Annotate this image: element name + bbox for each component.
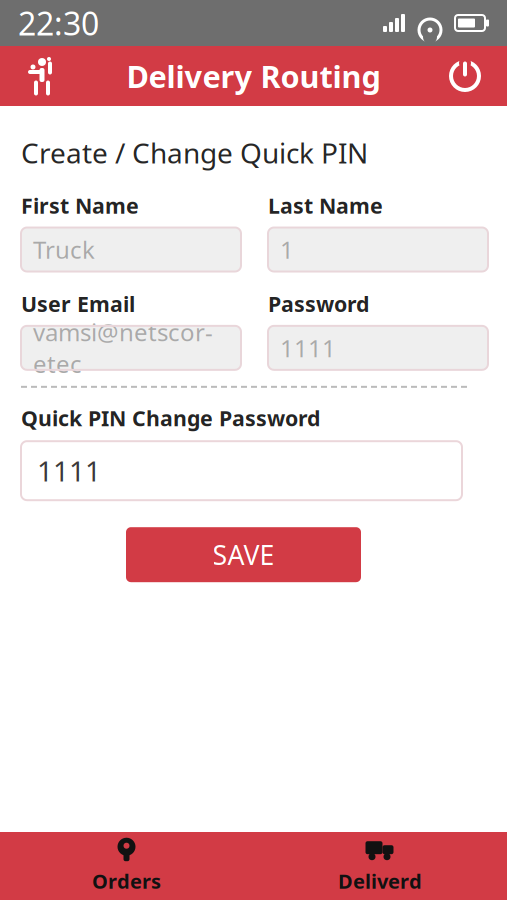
staticText: First Name (21, 191, 139, 219)
staticText: Quick PIN Change Password (21, 404, 320, 432)
staticText: 1 (280, 234, 294, 265)
button[interactable]: 1 (268, 227, 488, 271)
staticText: 1111 (280, 332, 336, 364)
staticText: Password (268, 289, 369, 318)
staticText: Delivery Routing (126, 56, 380, 96)
button[interactable]: Menu (14, 47, 70, 105)
button[interactable]: Truck (21, 227, 241, 271)
staticText: Orders (92, 868, 161, 894)
staticText: User Email (21, 289, 135, 318)
button[interactable]: Deliverd (253, 832, 507, 900)
button[interactable]: 1111 (268, 326, 488, 370)
staticText: Last Name (268, 191, 383, 219)
staticText: Create / Change Quick PIN (21, 134, 368, 171)
staticText: Truck (33, 234, 95, 265)
button[interactable]: Log out (437, 47, 493, 105)
staticText: SAVE (212, 537, 274, 572)
button[interactable]: Orders (0, 832, 253, 900)
staticText: 1111 (37, 452, 101, 489)
button[interactable]: vamsi@netscoretec (21, 326, 241, 370)
button[interactable]: SAVE (126, 527, 361, 582)
staticText: Deliverd (338, 868, 422, 894)
button[interactable]: 1111 (21, 441, 462, 500)
staticText: 22:30 (18, 2, 99, 44)
staticText: vamsi@netscoretec (33, 316, 213, 380)
